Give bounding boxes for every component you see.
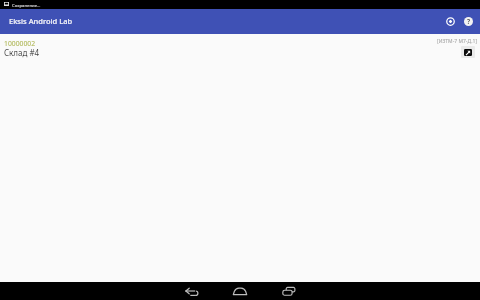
staticText: Сохранение… [12, 2, 41, 8]
button[interactable]: Open [461, 46, 475, 58]
button[interactable]: Recents [265, 282, 313, 300]
button[interactable]: Add [440, 11, 460, 31]
staticText: Eksis Android Lab [9, 16, 73, 26]
staticText: [ИЗТМ-7 М7-Д.1] [437, 38, 478, 45]
staticText: ? [467, 17, 471, 26]
staticText: Склад #4 [4, 47, 40, 58]
staticText: 10000002 [4, 39, 36, 48]
button[interactable]: Help [458, 11, 478, 31]
button[interactable]: 10000002 [0, 34, 480, 60]
button[interactable]: Home [216, 282, 264, 300]
button[interactable]: Back [168, 282, 216, 300]
